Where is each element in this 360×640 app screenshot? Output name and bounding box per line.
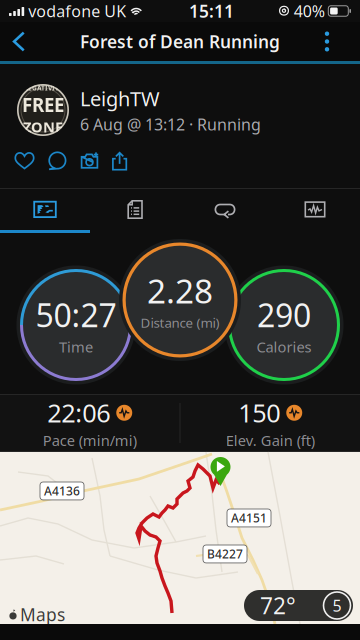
button[interactable]: Charts [270, 189, 360, 230]
button[interactable]: Map [0, 189, 90, 230]
staticText: Calories [256, 337, 311, 356]
staticText: Elev. Gain (ft) [226, 431, 315, 450]
button[interactable]: Add photo [74, 146, 105, 176]
staticText: Forest of Dean Running [80, 30, 280, 53]
button[interactable]: Comment [41, 146, 74, 176]
staticText: B4227 [207, 546, 243, 562]
staticText: 150 [238, 396, 280, 429]
staticText: 2.28 [147, 268, 213, 313]
button[interactable]: Laps [180, 189, 270, 230]
button[interactable]: More options [316, 22, 360, 61]
staticText: 22:06 [47, 396, 110, 429]
staticText: 40% [290, 0, 325, 22]
button[interactable]: Like [8, 146, 41, 176]
staticText: FREE [22, 92, 64, 117]
staticText: NEGATIVITY [23, 83, 63, 92]
staticText: ZONE [23, 117, 63, 137]
button[interactable]: Details [90, 189, 180, 230]
staticText: A4136 [44, 483, 80, 499]
staticText: 15:11 [189, 0, 234, 22]
staticText: Distance (mi) [140, 314, 219, 331]
staticText: 5 [332, 595, 341, 616]
staticText: vodafone UK [24, 0, 126, 22]
button[interactable]: Back [0, 22, 30, 61]
staticText: 72° [260, 590, 296, 620]
button[interactable]: Share [105, 146, 135, 176]
staticText: Maps [20, 603, 65, 626]
staticText: Time [59, 337, 93, 356]
staticText: 6 Aug @ 13:12 · Running [80, 114, 261, 135]
staticText: 50:27 [35, 293, 116, 336]
staticText: A4151 [231, 510, 267, 526]
staticText: 290 [257, 293, 311, 336]
staticText: LeighTW [80, 85, 160, 112]
staticText: Pace (min/mi) [43, 431, 137, 450]
